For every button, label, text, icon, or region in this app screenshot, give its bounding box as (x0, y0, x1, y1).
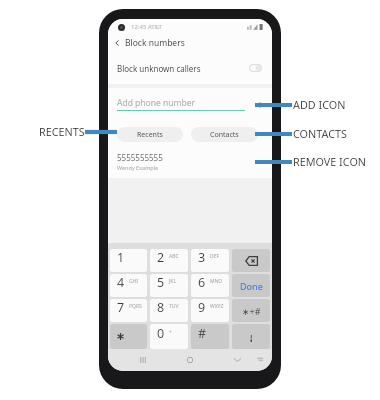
staticText: 5 (157, 274, 165, 291)
button[interactable]: ∗+# (232, 299, 270, 322)
button[interactable]: 6 (191, 274, 229, 297)
staticText: GHI (129, 278, 139, 285)
staticText: ABC (169, 253, 179, 260)
staticText: DEF (210, 253, 220, 260)
staticText: 8 (157, 299, 165, 316)
staticText: TUV (169, 303, 179, 310)
staticText: Add phone number (117, 97, 195, 109)
button[interactable]: # (191, 324, 229, 349)
button[interactable]: 5555555555 (108, 145, 272, 178)
staticText: Block numbers (125, 37, 185, 49)
staticText: 1 (117, 249, 125, 266)
staticText: Wendy Example (117, 164, 159, 171)
staticText: 5555555555 (117, 152, 163, 163)
staticText: Contacts (210, 130, 239, 140)
button[interactable] (110, 324, 147, 349)
button[interactable]: 7 (110, 299, 147, 322)
staticText: 7 (117, 299, 125, 316)
button[interactable]: Home (182, 352, 198, 368)
button[interactable]: 1 (110, 249, 147, 272)
button[interactable]: Remove icon (252, 155, 265, 168)
button[interactable]: Enter (232, 324, 270, 349)
staticText: 2 (157, 249, 165, 266)
button[interactable]: 5 (150, 274, 188, 297)
staticText: JKL (169, 278, 177, 285)
button[interactable]: Block unknown callers (108, 52, 272, 84)
button[interactable]: Contacts (191, 127, 258, 142)
button[interactable]: 4 (110, 274, 147, 297)
button[interactable]: 8 (150, 299, 188, 322)
staticText: PQRS (129, 303, 142, 310)
staticText: CONTACTS (293, 126, 347, 141)
other: Enter (232, 324, 270, 349)
button[interactable]: 2 (150, 249, 188, 272)
staticText: 3 (198, 249, 206, 266)
button[interactable]: Switch keyboard (253, 352, 267, 366)
staticText: Recents (137, 130, 163, 140)
staticText: REMOVE ICON (293, 154, 367, 169)
staticText: Done (240, 280, 263, 292)
staticText: MNO (210, 278, 223, 285)
button[interactable]: 3 (191, 249, 229, 272)
button[interactable]: Back (108, 34, 125, 52)
button[interactable]: 0 (150, 324, 188, 349)
staticText: + (169, 329, 172, 336)
staticText: Block unknown callers (117, 63, 201, 74)
staticText: 4 (117, 274, 125, 291)
staticText: ADD ICON (293, 97, 346, 112)
button[interactable]: Hide keyboard (229, 352, 245, 368)
button[interactable]: Backspace (232, 249, 270, 272)
other: Backspace (232, 249, 270, 272)
button[interactable]: Recents (117, 127, 183, 142)
staticText: 6 (198, 274, 206, 291)
staticText: RECENTS (39, 124, 85, 139)
button[interactable]: Add icon (253, 98, 266, 111)
button[interactable]: Recent apps (135, 352, 151, 368)
staticText: 9 (198, 299, 206, 316)
staticText: WXYZ (210, 303, 224, 310)
staticText: ∗+# (242, 305, 261, 317)
button[interactable]: 9 (191, 299, 229, 322)
button[interactable]: Done (232, 274, 270, 297)
staticText: # (198, 325, 207, 342)
staticText: 12:45 AT&T (131, 23, 162, 31)
staticText: 0 (157, 325, 165, 342)
